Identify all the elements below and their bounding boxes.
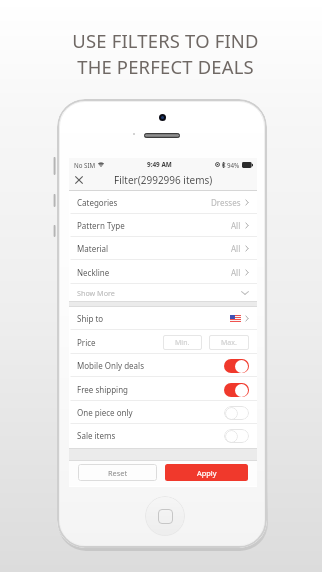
staticText: All (231, 220, 241, 231)
button[interactable]: Switch off (224, 406, 249, 420)
staticText: Reset (108, 468, 128, 478)
staticText: No SIM (74, 161, 96, 169)
button[interactable]: Switch off (224, 429, 249, 443)
button[interactable]: Apply (165, 464, 248, 481)
button[interactable]: Free shipping (69, 378, 257, 401)
button[interactable]: One piece only (69, 401, 257, 424)
staticText: Mobile Only deals (77, 360, 144, 371)
staticText: Show More (77, 288, 115, 298)
staticText: Material (77, 243, 109, 254)
button[interactable]: Reset (78, 464, 157, 481)
button[interactable]: Material (69, 237, 257, 260)
staticText: Price (77, 337, 96, 348)
staticText: 9:49 AM (147, 160, 172, 169)
staticText: Ship to (77, 313, 104, 324)
staticText: Min. (175, 338, 190, 348)
staticText: Free shipping (77, 384, 129, 395)
button[interactable]: Switch on (224, 383, 249, 397)
staticText: Categories (77, 197, 118, 208)
staticText: All (231, 267, 241, 278)
staticText: Sale items (77, 430, 116, 441)
staticText: One piece only (77, 407, 133, 418)
staticText: Neckline (77, 267, 110, 278)
button[interactable]: Show More (69, 284, 257, 301)
button[interactable]: Switch on (224, 359, 249, 373)
button[interactable]: Min. (163, 335, 202, 350)
button[interactable]: Max. (209, 335, 249, 350)
staticText: 94% (227, 161, 240, 169)
staticText: Filter(2992996 items) (114, 173, 213, 187)
button[interactable]: Sale items (69, 424, 257, 447)
button[interactable]: Neckline (69, 261, 257, 284)
button[interactable]: Close (69, 171, 89, 191)
staticText: Pattern Type (77, 220, 125, 231)
button[interactable]: Categories (69, 191, 257, 214)
staticText: USE FILTERS TO FIND THE PERFECT DEALS (72, 28, 259, 80)
button[interactable]: Mobile Only deals (69, 354, 257, 377)
staticText: Apply (197, 468, 217, 478)
staticText: Dresses (211, 197, 241, 208)
button[interactable]: Pattern Type (69, 214, 257, 237)
staticText: Max. (221, 338, 237, 348)
button[interactable]: Home (145, 496, 185, 536)
button[interactable]: Ship to (69, 307, 257, 330)
staticText: All (231, 243, 241, 254)
